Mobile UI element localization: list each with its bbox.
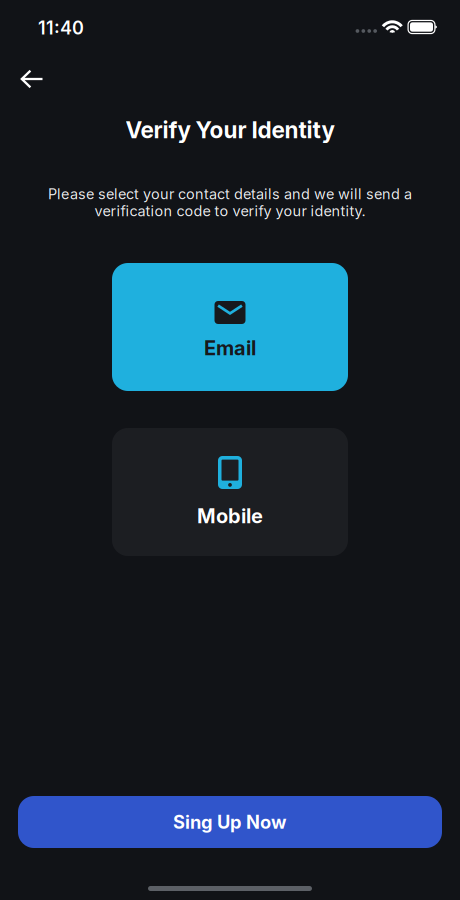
- staticText: Mobile: [197, 504, 263, 528]
- button[interactable]: Back: [12, 62, 52, 96]
- staticText: Sing Up Now: [173, 811, 287, 833]
- staticText: verification code to verify your identit…: [94, 202, 365, 220]
- button[interactable]: Sing Up Now: [18, 796, 442, 848]
- button[interactable]: Mobile: [112, 428, 348, 556]
- staticText: Email: [204, 336, 256, 360]
- button[interactable]: Email: [112, 263, 348, 391]
- staticText: Please select your contact details and w…: [48, 185, 412, 203]
- staticText: 11:40: [38, 17, 84, 39]
- staticText: Verify Your Identity: [125, 116, 334, 144]
